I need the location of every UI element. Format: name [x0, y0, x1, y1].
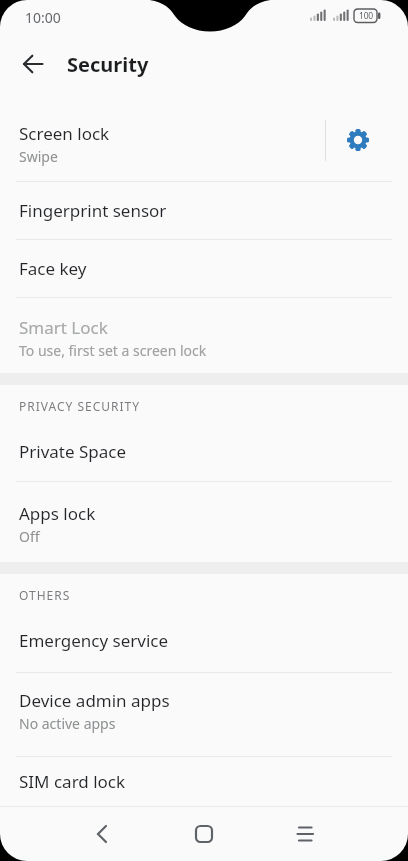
staticText: Swipe: [19, 147, 58, 166]
button[interactable]: Fingerprint sensor: [0, 182, 408, 239]
staticText: 10:00: [25, 8, 61, 27]
button[interactable]: Device admin apps: [0, 673, 408, 756]
button[interactable]: [182, 812, 226, 856]
staticText: PRIVACY SECURITY: [19, 398, 141, 414]
button[interactable]: [336, 118, 380, 162]
button[interactable]: [80, 812, 124, 856]
staticText: Device admin apps: [19, 689, 170, 712]
staticText: Smart Lock: [19, 316, 108, 339]
staticText: No active apps: [19, 714, 116, 733]
staticText: OTHERS: [19, 587, 71, 603]
staticText: Screen lock: [19, 122, 110, 145]
staticText: Face key: [19, 257, 87, 280]
staticText: Private Space: [19, 440, 127, 463]
staticText: 100: [359, 10, 373, 22]
staticText: Off: [19, 527, 40, 546]
staticText: Security: [67, 51, 149, 78]
button[interactable]: Smart Lock: [0, 298, 408, 373]
staticText: To use, first set a screen lock: [19, 341, 207, 360]
staticText: Emergency service: [19, 629, 169, 652]
button[interactable]: Emergency service: [0, 612, 408, 672]
staticText: Fingerprint sensor: [19, 199, 167, 222]
button[interactable]: Private Space: [0, 423, 408, 481]
button[interactable]: Apps lock: [0, 482, 408, 562]
staticText: SIM card lock: [19, 770, 126, 793]
button[interactable]: Screen lock: [0, 92, 408, 181]
staticText: Apps lock: [19, 502, 96, 525]
button[interactable]: SIM card lock: [0, 757, 408, 806]
button[interactable]: [12, 42, 56, 86]
button[interactable]: Face key: [0, 240, 408, 297]
button[interactable]: [283, 812, 327, 856]
